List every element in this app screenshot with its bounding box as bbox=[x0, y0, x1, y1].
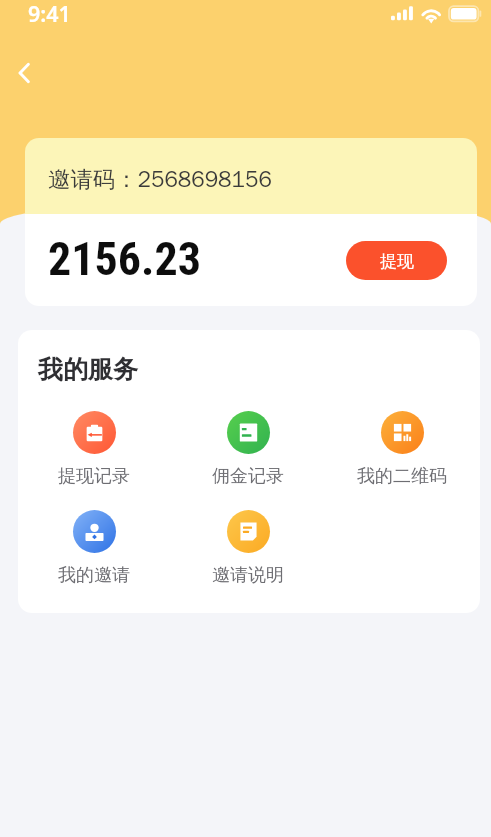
staticText: 提现记录 bbox=[58, 465, 130, 488]
staticText: 2156.23 bbox=[48, 232, 202, 286]
button[interactable]: 我的二维码 bbox=[325, 411, 479, 488]
staticText: 9:41 bbox=[28, 0, 71, 28]
staticText: 邀请说明 bbox=[212, 564, 284, 587]
staticText: 我的服务 bbox=[38, 354, 138, 385]
staticText: 邀请码：2568698156 bbox=[48, 165, 272, 193]
staticText: 佣金记录 bbox=[212, 465, 284, 488]
button[interactable]: 佣金记录 bbox=[171, 411, 325, 488]
button[interactable]: 提现记录 bbox=[18, 411, 171, 488]
button[interactable]: 邀请说明 bbox=[171, 510, 325, 587]
button[interactable]: 提现 bbox=[346, 241, 447, 280]
button[interactable]: Back bbox=[7, 56, 41, 90]
staticText: 我的二维码 bbox=[357, 465, 447, 488]
staticText: 提现 bbox=[380, 251, 414, 272]
staticText: 我的邀请 bbox=[58, 564, 130, 587]
button[interactable]: 我的邀请 bbox=[18, 510, 171, 587]
